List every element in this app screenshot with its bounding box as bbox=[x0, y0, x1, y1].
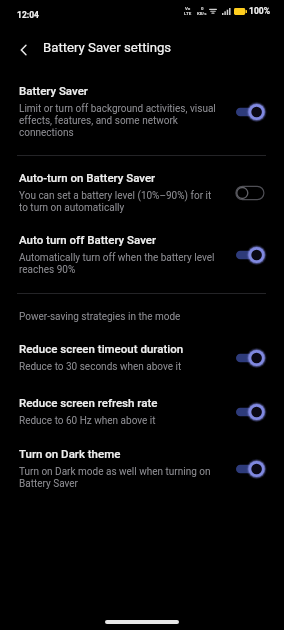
button[interactable]: Switch on bbox=[235, 349, 265, 367]
button[interactable]: Switch on bbox=[235, 103, 265, 121]
staticText: Auto turn off Battery Saver bbox=[19, 233, 156, 246]
staticText: 100% bbox=[249, 6, 270, 16]
staticText: LTE bbox=[184, 11, 192, 16]
staticText: Reduce screen refresh rate bbox=[19, 396, 158, 409]
staticText: You can set a battery level (10%–90%) fo… bbox=[19, 190, 212, 202]
staticText: to turn on automatically bbox=[19, 202, 125, 214]
staticText: effects, features, and some network bbox=[19, 115, 178, 127]
button[interactable]: Reduce screen timeout duration bbox=[0, 342, 284, 383]
button[interactable]: Auto turn off Battery Saver bbox=[0, 233, 284, 286]
staticText: Battery Saver bbox=[19, 84, 88, 97]
button[interactable]: Switch on bbox=[235, 246, 265, 264]
staticText: Reduce to 60 Hz when above it bbox=[19, 415, 156, 427]
button[interactable]: Back bbox=[10, 36, 38, 64]
button[interactable]: Switch on bbox=[235, 403, 265, 421]
staticText: Reduce screen timeout duration bbox=[19, 342, 184, 355]
staticText: KB/s bbox=[197, 11, 207, 16]
staticText: Battery Saver bbox=[19, 478, 78, 490]
staticText: 0 bbox=[201, 6, 204, 11]
button[interactable]: Switch on bbox=[235, 460, 265, 478]
staticText: reaches 90% bbox=[19, 264, 76, 276]
button[interactable]: Switch off bbox=[235, 184, 265, 202]
button[interactable]: Turn on Dark theme bbox=[0, 447, 284, 500]
button[interactable]: Reduce screen refresh rate bbox=[0, 396, 284, 437]
staticText: Auto-turn on Battery Saver bbox=[19, 171, 156, 184]
staticText: Reduce to 30 seconds when above it bbox=[19, 361, 182, 373]
staticText: 12:04 bbox=[17, 10, 39, 20]
staticText: Turn on Dark mode as well when turning o… bbox=[19, 466, 211, 478]
staticText: connections bbox=[19, 127, 74, 139]
staticText: Turn on Dark theme bbox=[19, 447, 121, 460]
staticText: Vo bbox=[185, 6, 191, 11]
staticText: Limit or turn off background activities,… bbox=[19, 103, 216, 115]
button[interactable]: Battery Saver bbox=[0, 84, 284, 149]
staticText: Power-saving strategies in the mode bbox=[19, 311, 181, 323]
staticText: Battery Saver settings bbox=[43, 40, 172, 55]
button[interactable]: Auto-turn on Battery Saver bbox=[0, 171, 284, 224]
staticText: Automatically turn off when the battery … bbox=[19, 252, 215, 264]
